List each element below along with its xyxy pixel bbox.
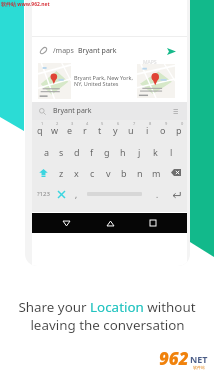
button[interactable]: l — [163, 141, 179, 162]
staticText: Bryant park — [78, 46, 117, 56]
button[interactable]: n — [132, 162, 148, 183]
staticText: p — [176, 124, 182, 136]
staticText: , — [75, 189, 78, 200]
button[interactable]: Backspace — [164, 162, 187, 183]
staticText: Bryant park — [53, 106, 92, 116]
staticText: 962 — [159, 347, 189, 370]
button[interactable]: j — [131, 141, 147, 162]
button[interactable]: , — [69, 183, 84, 205]
staticText: x — [74, 167, 79, 179]
staticText: r — [83, 124, 87, 136]
staticText: 8 — [149, 121, 152, 126]
staticText: t — [98, 124, 102, 136]
button[interactable]: Recents — [143, 213, 163, 233]
button[interactable]: Close keyboard — [54, 183, 69, 205]
staticText: e — [67, 124, 73, 136]
staticText: m — [152, 167, 161, 179]
button[interactable]: Attach — [32, 40, 187, 61]
button[interactable]: z — [54, 162, 69, 183]
staticText: u — [128, 124, 134, 136]
staticText: 7 — [133, 121, 136, 126]
button[interactable]: More — [171, 106, 181, 116]
button[interactable]: d — [69, 141, 84, 162]
button[interactable]: f — [84, 141, 99, 162]
staticText: d — [74, 146, 80, 158]
staticText: Share your Location without — [18, 298, 196, 316]
button[interactable]: g — [99, 141, 115, 162]
staticText: o — [160, 124, 166, 136]
staticText: c — [90, 167, 95, 179]
staticText: v — [106, 167, 111, 179]
staticText: 5 — [101, 121, 104, 126]
staticText: 0 — [181, 121, 184, 126]
staticText: k — [153, 146, 158, 158]
button[interactable]: Send — [163, 43, 179, 59]
button[interactable]: b — [116, 162, 132, 183]
staticText: z — [59, 167, 64, 179]
button[interactable]: Home — [100, 213, 120, 233]
button[interactable]: 0 — [171, 120, 187, 141]
button[interactable]: m — [148, 162, 164, 183]
staticText: f — [90, 146, 94, 158]
button[interactable]: Space — [84, 183, 150, 205]
button[interactable]: 1 — [32, 120, 47, 141]
staticText: 3 — [71, 121, 74, 126]
staticText: 2 — [56, 121, 59, 126]
staticText: /maps — [53, 46, 74, 56]
staticText: Bryant Park, New York, NY, United States — [74, 74, 133, 88]
staticText: NET — [190, 353, 208, 365]
staticText: . — [156, 189, 159, 200]
staticText: l — [170, 146, 173, 158]
staticText: leaving the conversation — [30, 316, 185, 334]
button[interactable]: 5 — [92, 120, 107, 141]
other: Search — [39, 108, 46, 115]
button[interactable]: Bryant Park, New York, NY, United States — [32, 63, 187, 99]
button[interactable]: s — [54, 141, 69, 162]
staticText: 6 — [117, 121, 120, 126]
button[interactable]: 9 — [155, 120, 171, 141]
staticText: n — [137, 167, 143, 179]
staticText: 软件站 www.962.net — [1, 1, 50, 8]
button[interactable]: Back — [56, 213, 76, 233]
button[interactable]: Search — [32, 102, 187, 120]
staticText: 1 — [41, 121, 44, 126]
staticText: ?123 — [37, 190, 50, 198]
staticText: 4 — [86, 121, 89, 126]
staticText: y — [113, 124, 118, 136]
staticText: g — [104, 146, 110, 158]
button[interactable]: c — [84, 162, 100, 183]
button[interactable]: 2 — [47, 120, 62, 141]
button[interactable]: 8 — [139, 120, 155, 141]
button[interactable]: 6 — [107, 120, 123, 141]
button[interactable]: Shift — [32, 162, 54, 183]
staticText: q — [37, 124, 43, 136]
button[interactable]: . — [150, 183, 165, 205]
other: Attach — [39, 46, 48, 55]
staticText: i — [146, 124, 149, 136]
staticText: 软件站 — [193, 365, 205, 370]
staticText: MAPS — [143, 59, 157, 66]
staticText: w — [51, 124, 59, 136]
button[interactable]: 3 — [62, 120, 77, 141]
staticText: b — [121, 167, 127, 179]
button[interactable]: ?123 — [32, 183, 54, 205]
button[interactable]: v — [100, 162, 116, 183]
button[interactable]: 4 — [77, 120, 92, 141]
button[interactable]: k — [147, 141, 163, 162]
button[interactable]: x — [69, 162, 84, 183]
button[interactable]: h — [115, 141, 131, 162]
staticText: 9 — [165, 121, 168, 126]
staticText: j — [138, 146, 141, 158]
staticText: h — [120, 146, 126, 158]
staticText: s — [59, 146, 64, 158]
staticText: a — [44, 146, 50, 158]
button[interactable]: 7 — [123, 120, 139, 141]
button[interactable]: Enter — [165, 183, 187, 205]
button[interactable]: a — [39, 141, 54, 162]
staticText: ☰ — [173, 108, 179, 115]
